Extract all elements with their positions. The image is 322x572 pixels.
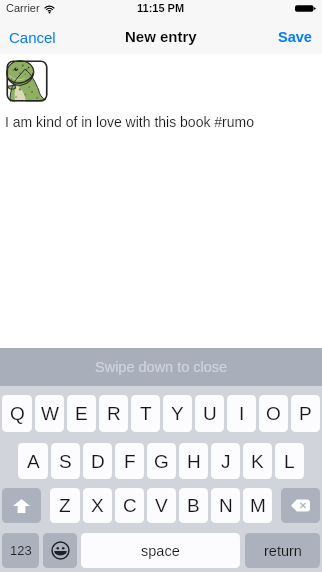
staticText: New entry [125,28,197,45]
button[interactable]: K [243,443,272,479]
staticText: 11:15 PM [137,2,185,14]
staticText: Cancel [9,29,56,46]
staticText: R [107,403,121,424]
staticText: O [266,403,281,424]
staticText: return [264,543,302,559]
staticText: T [140,403,152,424]
button[interactable]: return [245,533,320,568]
button[interactable]: N [211,488,240,523]
staticText: Swipe down to close [95,359,228,375]
button[interactable]: P [291,395,320,432]
button[interactable]: Save [268,20,322,54]
button[interactable]: Cancel [0,20,65,54]
button[interactable]: Shift [2,488,41,523]
staticText: K [251,451,264,472]
button[interactable]: Backspace [281,488,320,523]
staticText: E [75,403,88,424]
button[interactable]: G [147,443,176,479]
button[interactable]: Emoji [43,533,77,568]
button[interactable]: J [211,443,240,479]
staticText: H [187,451,201,472]
button[interactable]: Z [50,488,80,523]
staticText: F [124,451,136,472]
button[interactable]: Y [163,395,192,432]
staticText: S [59,451,72,472]
staticText: Save [278,29,312,45]
staticText: L [284,451,295,472]
staticText: V [155,495,168,516]
button[interactable]: A [18,443,48,479]
staticText: W [41,403,59,424]
button[interactable]: F [115,443,144,479]
button[interactable]: W [35,395,64,432]
button[interactable]: D [83,443,112,479]
staticText: N [219,495,233,516]
button[interactable]: L [275,443,304,479]
button[interactable]: I [227,395,256,432]
staticText: space [141,543,180,559]
staticText: J [221,451,231,472]
button[interactable]: H [179,443,208,479]
staticText: B [187,495,200,516]
button[interactable]: space [81,533,240,568]
button[interactable]: U [195,395,224,432]
button[interactable]: V [147,488,176,523]
button[interactable]: S [51,443,80,479]
staticText: U [203,403,217,424]
staticText: Y [171,403,184,424]
button[interactable]: 123 [2,533,39,568]
staticText: D [91,451,105,472]
button[interactable]: E [67,395,96,432]
staticText: I [239,403,245,424]
button[interactable]: Swipe down to close [0,348,322,386]
button[interactable]: X [83,488,112,523]
button[interactable]: T [131,395,160,432]
staticText: C [123,495,137,516]
staticText: G [154,451,169,472]
button[interactable]: Q [2,395,32,432]
button[interactable]: C [115,488,144,523]
button[interactable]: M [243,488,272,523]
staticText: Z [59,495,71,516]
button[interactable]: B [179,488,208,523]
staticText: Carrier [6,2,40,14]
staticText: X [91,495,104,516]
staticText: Q [10,403,25,424]
button[interactable]: R [99,395,128,432]
staticText: M [250,495,266,516]
button[interactable]: O [259,395,288,432]
staticText: 123 [10,543,32,558]
staticText: I am kind of in love with this book #rum… [5,114,255,130]
staticText: A [27,451,40,472]
staticText: P [299,403,312,424]
